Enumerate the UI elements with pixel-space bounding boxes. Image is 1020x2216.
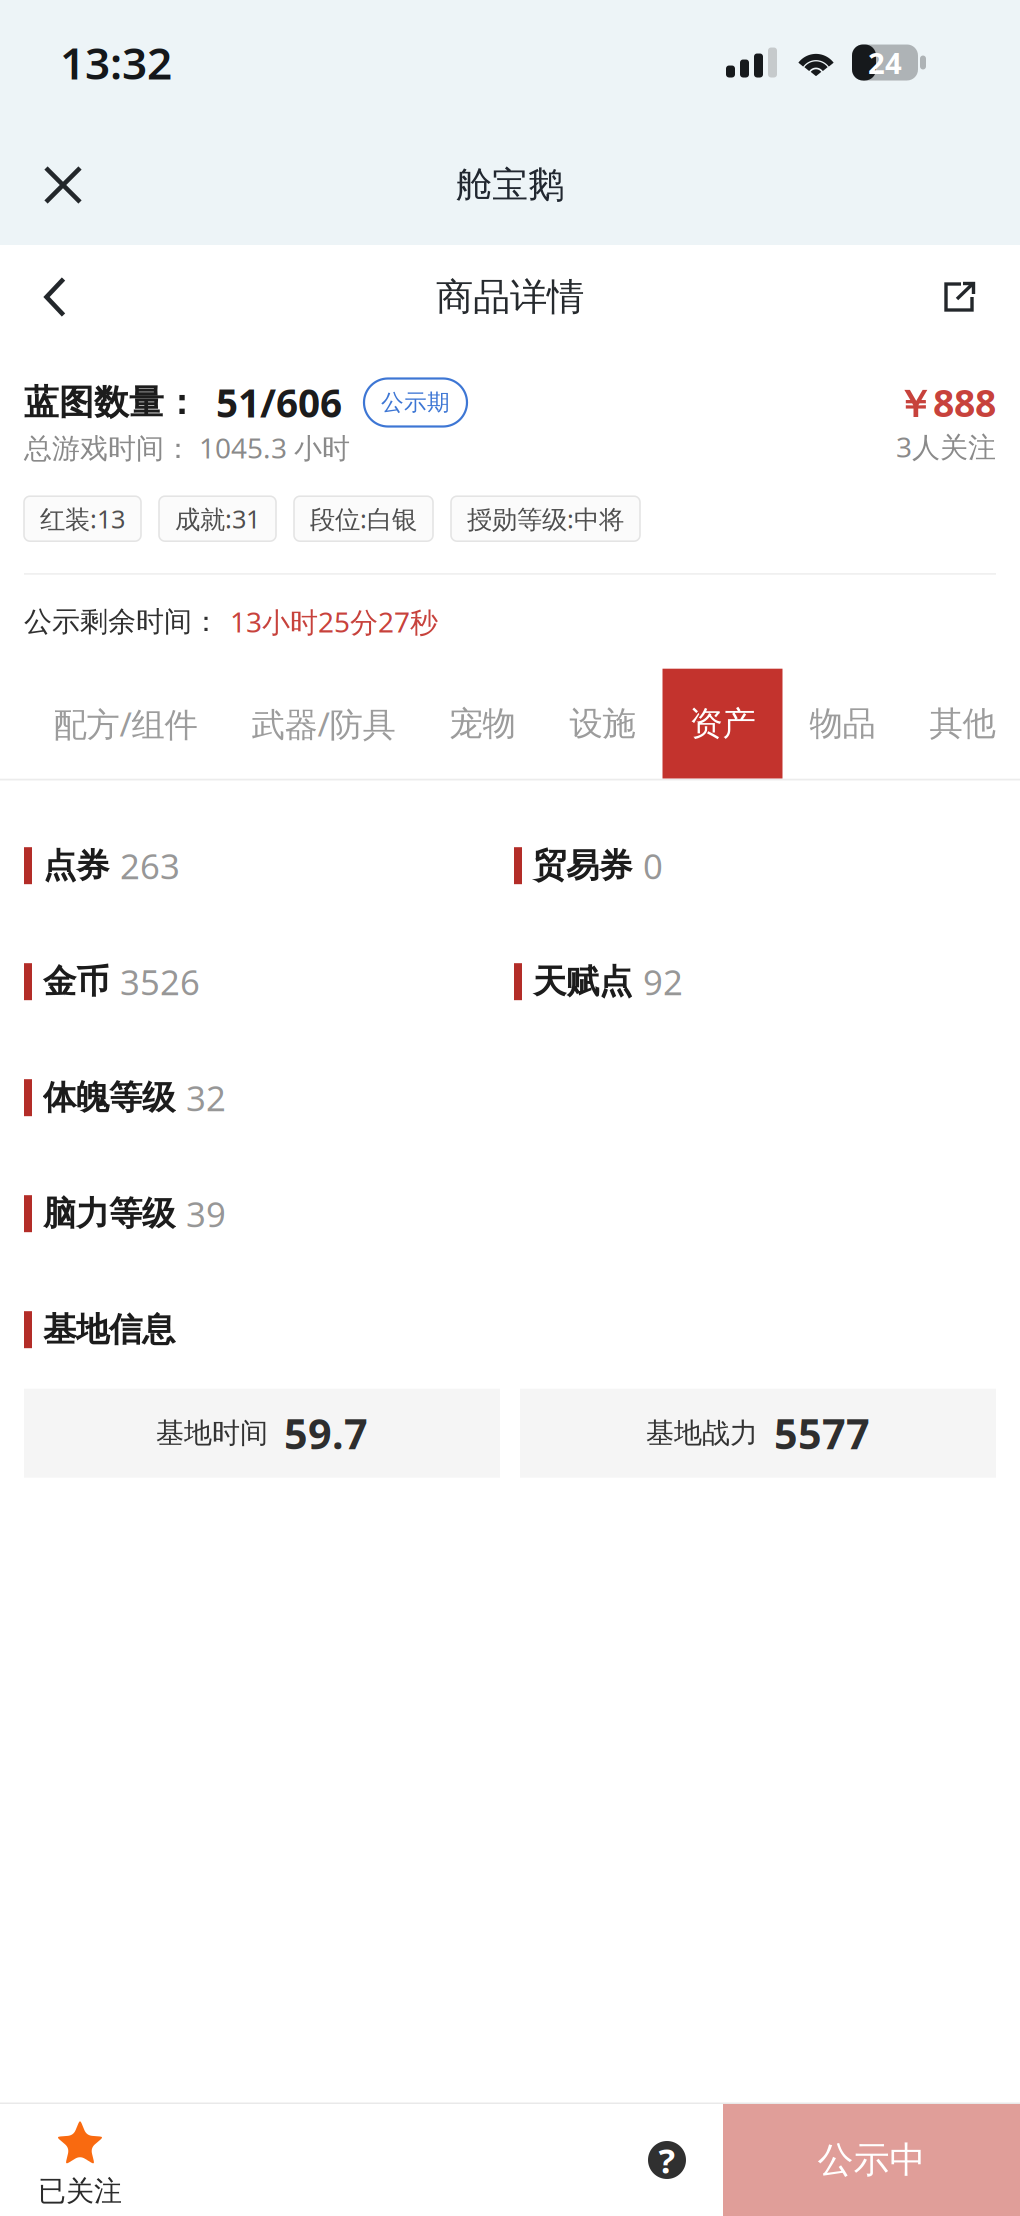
button[interactable]: Help	[611, 2104, 723, 2216]
staticText: ￥888	[896, 378, 996, 427]
staticText: 贸易券	[533, 845, 632, 886]
staticText: 授勋等级:中将	[467, 502, 624, 535]
staticText: 基地信息	[43, 1309, 175, 1350]
staticText: 51/606	[216, 377, 342, 428]
staticText: 0	[643, 843, 663, 889]
staticText: 红装:13	[40, 502, 125, 535]
staticText: 3526	[120, 959, 200, 1005]
staticText: 金币	[43, 961, 109, 1002]
button[interactable]: 宠物	[422, 669, 542, 779]
button[interactable]: 成就:31	[159, 496, 276, 541]
staticText: 已关注	[38, 2174, 122, 2208]
staticText: 天赋点	[533, 961, 632, 1002]
button[interactable]: Back	[19, 254, 91, 340]
staticText: 舱宝鹅	[456, 163, 564, 207]
staticText: 公示剩余时间：	[24, 604, 220, 639]
button[interactable]: 段位:白银	[294, 496, 433, 541]
staticText: 武器/防具	[251, 702, 395, 746]
button[interactable]: 授勋等级:中将	[451, 496, 640, 541]
staticText: 3人关注	[896, 428, 996, 465]
button[interactable]: 公示中	[723, 2104, 1020, 2216]
staticText: 13小时25分27秒	[230, 603, 438, 640]
staticText: 段位:白银	[310, 502, 417, 535]
button[interactable]: 资产	[662, 669, 782, 779]
staticText: 基地时间	[156, 1416, 268, 1450]
staticText: 其他	[929, 703, 995, 744]
staticText: 59.7	[284, 1406, 368, 1461]
staticText: 资产	[689, 703, 755, 744]
button[interactable]: 设施	[542, 669, 662, 779]
button[interactable]: 武器/防具	[224, 669, 422, 779]
button[interactable]: 已关注	[0, 2104, 160, 2216]
button[interactable]: Close	[21, 143, 105, 227]
staticText: 24	[868, 43, 902, 82]
staticText: 成就:31	[175, 502, 260, 535]
button[interactable]: 其他	[902, 669, 1020, 779]
staticText: 92	[643, 959, 683, 1005]
staticText: 配方/组件	[53, 702, 197, 746]
staticText: 39	[186, 1191, 226, 1237]
staticText: 体魄等级	[43, 1077, 175, 1118]
staticText: 公示中	[817, 2138, 925, 2182]
button[interactable]: Share	[924, 254, 996, 340]
staticText: 蓝图数量：	[24, 381, 199, 424]
button[interactable]: 物品	[782, 669, 902, 779]
staticText: 点券	[43, 845, 109, 886]
staticText: 设施	[569, 703, 635, 744]
staticText: 263	[120, 843, 180, 889]
staticText: 13:32	[60, 33, 172, 92]
staticText: 商品详情	[436, 274, 584, 320]
staticText: 公示期	[381, 389, 450, 416]
button[interactable]: 红装:13	[24, 496, 141, 541]
staticText: 32	[186, 1075, 226, 1121]
staticText: ?	[658, 2137, 675, 2183]
staticText: 基地战力	[646, 1416, 758, 1450]
staticText: 物品	[809, 703, 875, 744]
button[interactable]: 配方/组件	[26, 669, 224, 779]
staticText: 5577	[774, 1406, 870, 1461]
staticText: 脑力等级	[43, 1193, 175, 1234]
staticText: 宠物	[449, 703, 515, 744]
staticText: 总游戏时间： 1045.3 小时	[24, 429, 350, 466]
